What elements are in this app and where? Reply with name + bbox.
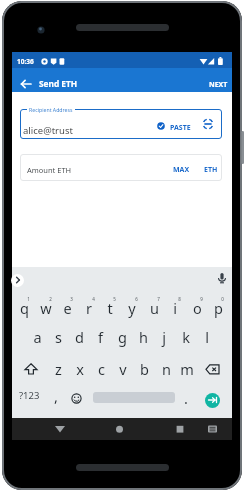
staticText: r xyxy=(86,298,92,318)
button[interactable] xyxy=(110,419,130,439)
button[interactable] xyxy=(205,364,220,375)
button[interactable] xyxy=(50,419,70,439)
button[interactable]: c xyxy=(91,359,111,379)
staticText: Recipient Address xyxy=(29,106,73,113)
staticText: 9 xyxy=(200,296,203,302)
staticText: m xyxy=(180,359,194,379)
button[interactable] xyxy=(205,393,220,408)
staticText: v xyxy=(119,359,127,379)
button[interactable] xyxy=(203,419,223,439)
button[interactable]: 7 xyxy=(148,289,168,309)
staticText: 2 xyxy=(49,296,52,302)
staticText: j xyxy=(162,327,166,347)
button[interactable]: 3 xyxy=(61,289,81,309)
button[interactable]: x xyxy=(70,359,90,379)
button[interactable]: 6 xyxy=(126,289,146,309)
button[interactable]: j xyxy=(154,327,174,347)
staticText: alice@trust xyxy=(23,124,73,137)
button[interactable]: NEXT xyxy=(12,52,31,62)
staticText: 1 xyxy=(27,296,30,302)
staticText: 10:36 xyxy=(17,57,34,66)
button[interactable]: 0 xyxy=(212,289,232,309)
button[interactable]: h xyxy=(133,327,153,347)
button[interactable] xyxy=(11,274,24,287)
button[interactable]: 8 xyxy=(169,289,189,309)
button[interactable]: y xyxy=(122,298,142,318)
staticText: y xyxy=(128,298,136,318)
button[interactable]: p xyxy=(208,298,228,318)
staticText: Amount ETH xyxy=(27,165,72,175)
staticText: 8 xyxy=(178,296,181,302)
button[interactable]: q xyxy=(14,298,34,318)
button[interactable]: . xyxy=(176,388,196,408)
staticText: o xyxy=(193,298,202,318)
button[interactable] xyxy=(12,68,232,92)
button[interactable]: v xyxy=(113,359,133,379)
staticText: g xyxy=(118,327,127,347)
button[interactable]: t xyxy=(100,298,120,318)
button[interactable] xyxy=(156,121,166,131)
staticText: 5 xyxy=(113,296,116,302)
button[interactable]: PASTE xyxy=(12,52,33,62)
button[interactable]: u xyxy=(144,298,164,318)
button[interactable]: 2 xyxy=(40,289,60,309)
staticText: c xyxy=(98,359,105,379)
button[interactable]: , xyxy=(46,386,66,406)
button[interactable]: ?123 xyxy=(12,52,33,65)
staticText: p xyxy=(214,298,223,318)
button[interactable]: 1 xyxy=(18,289,38,309)
staticText: e xyxy=(63,298,72,318)
staticText: x xyxy=(76,359,84,379)
button[interactable] xyxy=(20,154,222,181)
button[interactable] xyxy=(24,363,38,375)
button[interactable]: 5 xyxy=(104,289,124,309)
button[interactable]: ETH xyxy=(12,52,26,62)
button[interactable]: l xyxy=(197,327,217,347)
button[interactable] xyxy=(20,109,222,139)
button[interactable]: d xyxy=(69,327,89,347)
staticText: a xyxy=(33,327,42,347)
button[interactable] xyxy=(170,419,190,439)
button[interactable]: r xyxy=(79,298,99,318)
staticText: d xyxy=(75,327,84,347)
staticText: Send ETH xyxy=(39,78,78,89)
staticText: i xyxy=(173,298,177,318)
staticText: . xyxy=(184,388,188,408)
button[interactable]: 4 xyxy=(83,289,103,309)
button[interactable]: MAX xyxy=(12,52,29,62)
staticText: 7 xyxy=(157,296,160,302)
button[interactable]: 9 xyxy=(191,289,211,309)
button[interactable] xyxy=(71,393,82,404)
button[interactable]: k xyxy=(176,327,196,347)
button[interactable]: a xyxy=(27,327,47,347)
staticText: s xyxy=(55,327,62,347)
staticText: 0 xyxy=(221,296,224,302)
button[interactable]: m xyxy=(177,359,197,379)
staticText: b xyxy=(140,359,149,379)
staticText: l xyxy=(205,327,209,347)
staticText: f xyxy=(98,327,103,347)
staticText: , xyxy=(54,386,58,406)
staticText: z xyxy=(55,359,62,379)
staticText: k xyxy=(182,327,190,347)
staticText: u xyxy=(150,298,159,318)
button[interactable]: o xyxy=(187,298,207,318)
staticText: 3 xyxy=(70,296,73,302)
staticText: t xyxy=(107,298,113,318)
staticText: q xyxy=(20,298,29,318)
button[interactable]: g xyxy=(112,327,132,347)
button[interactable]: i xyxy=(165,298,185,318)
staticText: w xyxy=(40,298,52,318)
button[interactable]: e xyxy=(57,298,77,318)
button[interactable]: w xyxy=(36,298,56,318)
button[interactable]: z xyxy=(48,359,68,379)
button[interactable]: b xyxy=(134,359,154,379)
staticText: h xyxy=(139,327,148,347)
staticText: 6 xyxy=(135,296,138,302)
staticText: n xyxy=(162,359,171,379)
button[interactable]: f xyxy=(90,327,110,347)
button[interactable] xyxy=(201,117,215,131)
button[interactable]: n xyxy=(156,359,176,379)
button[interactable]: s xyxy=(48,327,68,347)
